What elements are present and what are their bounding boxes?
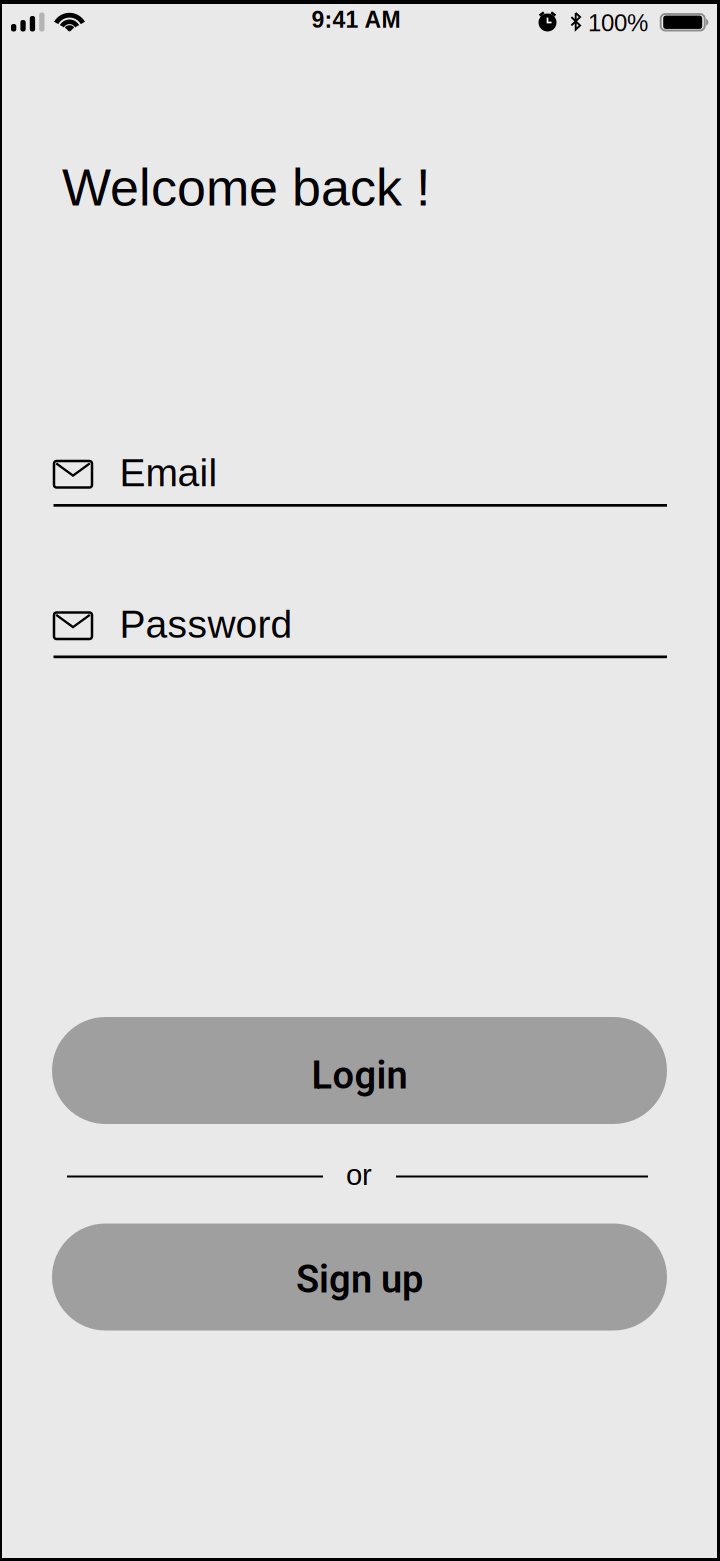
- button[interactable]: Email: [53, 447, 667, 507]
- button[interactable]: Login: [52, 1017, 667, 1124]
- staticText: Welcome back !: [62, 158, 430, 217]
- staticText: Email: [119, 451, 217, 495]
- staticText: Login: [311, 1053, 407, 1098]
- staticText: 9:41 AM: [311, 7, 400, 33]
- staticText: Password: [119, 602, 292, 646]
- staticText: or: [346, 1158, 372, 1191]
- button[interactable]: Sign up: [52, 1223, 667, 1330]
- staticText: Sign up: [296, 1257, 423, 1302]
- staticText: 100%: [588, 9, 648, 36]
- button[interactable]: Password: [53, 598, 667, 658]
